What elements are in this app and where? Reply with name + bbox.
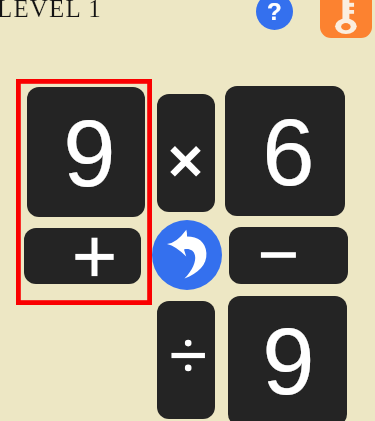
button[interactable]: TIMES	[157, 94, 215, 212]
button[interactable]: Help	[256, 0, 293, 30]
button[interactable]: Hint key	[320, 0, 372, 38]
staticText: ?	[267, 0, 282, 25]
staticText: 9	[262, 309, 315, 414]
button[interactable]: MINUS	[229, 227, 348, 284]
button[interactable]: 9	[228, 296, 347, 421]
button[interactable]: DIV	[157, 301, 215, 419]
staticText: 6	[262, 100, 315, 205]
button[interactable]: PLUS	[24, 228, 141, 284]
button[interactable]: 6	[225, 86, 345, 216]
staticText: 9	[63, 101, 116, 206]
button[interactable]: Undo	[152, 220, 222, 290]
button[interactable]: 9	[27, 87, 145, 217]
staticText: LEVEL 1	[0, 0, 103, 23]
